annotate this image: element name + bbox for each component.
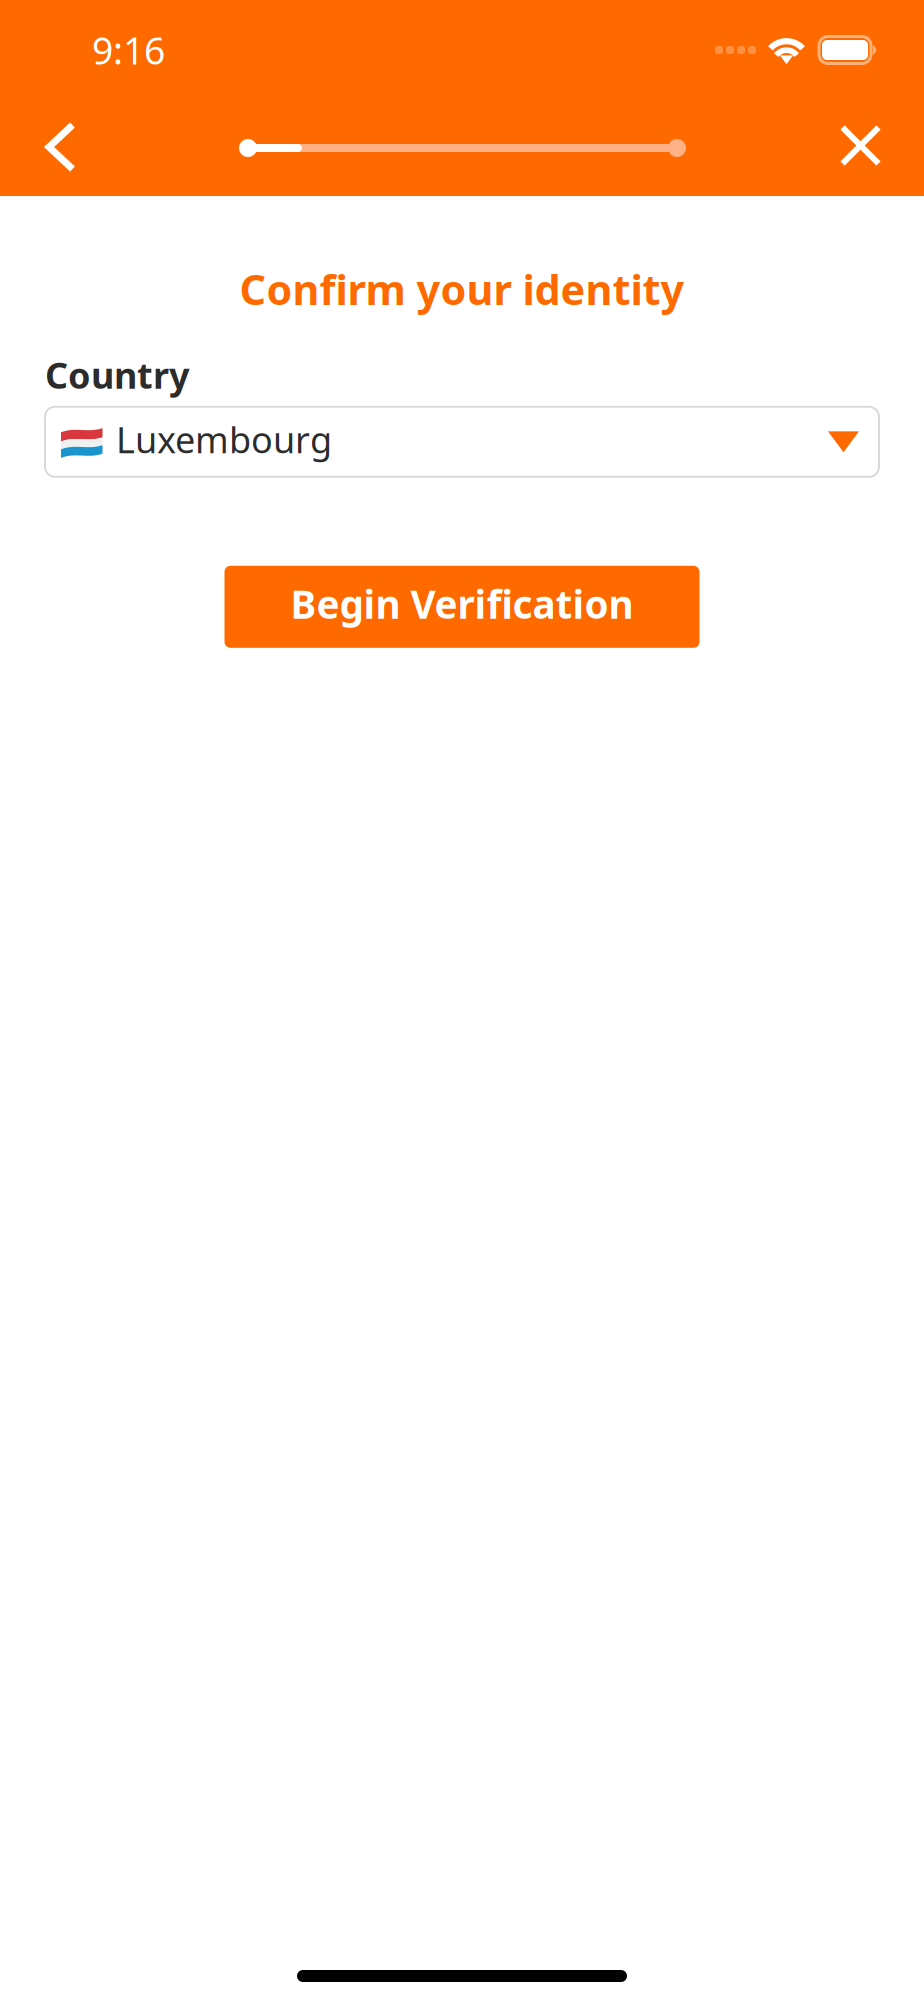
button[interactable]: Close bbox=[816, 103, 904, 193]
staticText: 9:16 bbox=[92, 25, 165, 75]
staticText: Begin Verification bbox=[290, 578, 633, 629]
staticText: Luxembourg bbox=[116, 415, 332, 463]
button[interactable]: Luxembourg bbox=[45, 407, 879, 477]
staticText: Confirm your identity bbox=[239, 262, 684, 316]
staticText: Country bbox=[45, 351, 190, 399]
button[interactable]: Begin Verification bbox=[224, 566, 699, 648]
button[interactable]: Back bbox=[16, 103, 104, 193]
